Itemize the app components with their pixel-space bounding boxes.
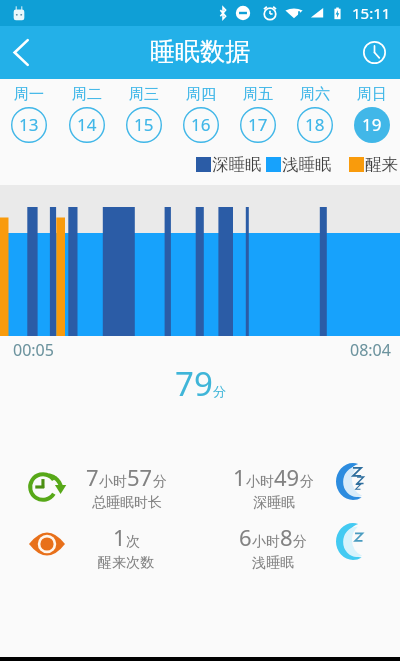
button[interactable]: 周一 (0, 79, 58, 149)
staticText: 周三 (129, 85, 159, 104)
staticText: 深睡眠 (253, 494, 295, 512)
staticText: 周二 (72, 85, 102, 104)
button[interactable]: 1 (200, 457, 400, 517)
staticText: 周四 (186, 85, 216, 104)
staticText: 15:11 (352, 3, 391, 23)
button[interactable]: History (348, 26, 400, 79)
button[interactable]: 1 (0, 517, 200, 577)
staticText: 浅睡眠 (252, 554, 294, 572)
staticText: 睡眠数据 (150, 36, 250, 67)
staticText: 周六 (300, 85, 330, 104)
staticText: 周五 (243, 85, 273, 104)
staticText: 浅睡眠 (282, 154, 332, 175)
staticText: 分 (153, 473, 167, 491)
staticText: 分 (300, 473, 314, 491)
staticText: 总睡眠时长 (92, 494, 162, 512)
staticText: 醒来次数 (98, 554, 154, 572)
staticText: 分 (213, 383, 226, 399)
staticText: 57 (127, 462, 153, 492)
staticText: 14 (77, 113, 97, 136)
button[interactable]: 6 (200, 517, 400, 577)
staticText: 49 (274, 462, 300, 492)
staticText: 1 (233, 462, 246, 492)
staticText: 15 (134, 113, 154, 136)
staticText: 次 (126, 533, 140, 551)
staticText: 分 (293, 533, 307, 551)
staticText: 13 (19, 113, 39, 136)
staticText: 6 (239, 522, 252, 552)
button[interactable]: 周三 (115, 79, 172, 149)
staticText: 17 (248, 113, 268, 136)
staticText: 深睡眠 (212, 154, 262, 175)
staticText: 00:05 (13, 339, 54, 361)
button[interactable]: 周四 (172, 79, 229, 149)
staticText: 小时 (246, 473, 274, 491)
button[interactable]: 周六 (286, 79, 343, 149)
staticText: 周一 (14, 85, 44, 104)
staticText: 小时 (252, 533, 280, 551)
button[interactable]: Back (0, 26, 44, 79)
staticText: 1 (113, 522, 126, 552)
staticText: 醒来 (365, 154, 398, 175)
staticText: 小时 (99, 473, 127, 491)
button[interactable]: 周五 (229, 79, 286, 149)
staticText: 18 (305, 113, 325, 136)
button[interactable]: 周二 (58, 79, 115, 149)
staticText: 7 (86, 462, 99, 492)
button[interactable]: 周日 (343, 79, 400, 149)
staticText: 周日 (357, 85, 387, 104)
staticText: 19 (362, 113, 382, 136)
staticText: 16 (191, 113, 211, 136)
staticText: 08:04 (350, 339, 391, 361)
staticText: 79 (175, 361, 213, 401)
button[interactable]: 7 (0, 457, 200, 517)
staticText: 8 (280, 522, 293, 552)
